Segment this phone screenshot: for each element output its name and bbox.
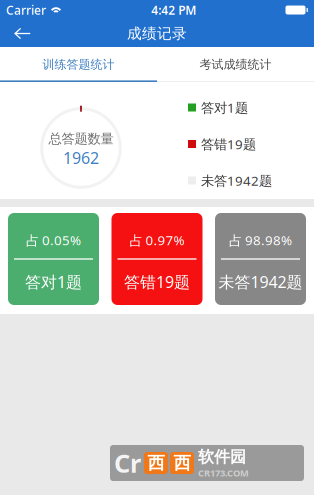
staticText: 答错19题 xyxy=(201,135,256,153)
staticText: 4:42 PM xyxy=(151,2,196,18)
staticText: 答对1题 xyxy=(201,99,248,116)
staticText: 答错19题 xyxy=(124,271,190,292)
staticText: 未答1942题 xyxy=(201,172,272,189)
button[interactable]: 占 98.98% xyxy=(215,213,306,305)
staticText: 西 xyxy=(147,452,164,474)
staticText: 占 98.98% xyxy=(229,231,292,249)
staticText: 1962 xyxy=(63,147,99,168)
staticText: 训练答题统计 xyxy=(42,57,114,72)
button[interactable]: 占 0.05% xyxy=(8,213,99,305)
button[interactable]: 训练答题统计 xyxy=(0,47,157,82)
staticText: 软件园 xyxy=(198,447,246,467)
staticText: 未答1942题 xyxy=(218,271,302,292)
staticText: 总答题数量 xyxy=(48,131,113,147)
button[interactable]: 考试成绩统计 xyxy=(157,47,314,82)
staticText: 答对1题 xyxy=(25,271,82,292)
staticText: Carrier xyxy=(6,2,46,18)
button[interactable]: 占 0.97% xyxy=(111,213,202,305)
staticText: 西 xyxy=(173,452,190,474)
staticText: Cr xyxy=(114,446,141,480)
button[interactable]: Back xyxy=(0,20,44,47)
staticText: 占 0.05% xyxy=(26,231,81,249)
staticText: 成绩记录 xyxy=(127,24,187,42)
staticText: 占 0.97% xyxy=(129,231,184,249)
staticText: CR173.COM xyxy=(198,467,249,479)
staticText: 考试成绩统计 xyxy=(199,57,271,72)
